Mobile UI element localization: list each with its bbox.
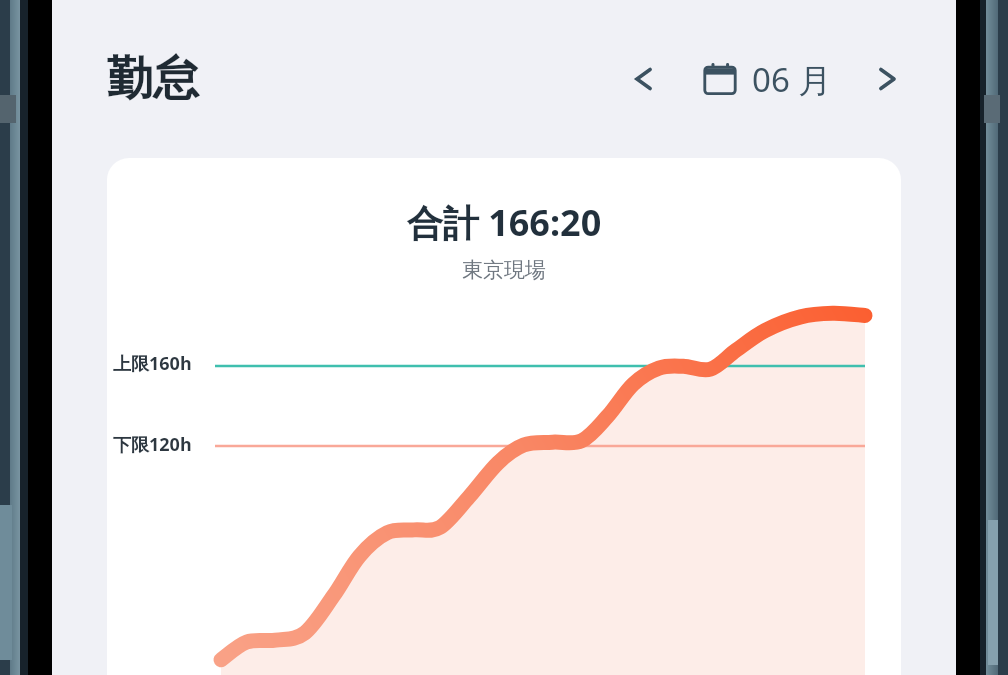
button[interactable]: 前の月 [617,53,669,105]
staticText: 下限120h [113,432,192,457]
button[interactable]: 次の月 [862,53,914,105]
staticText: 上限160h [113,351,192,376]
button[interactable]: 06 月 [695,51,838,108]
staticText: 06 月 [752,57,832,102]
button[interactable]: 合計 166:20 [107,158,901,675]
staticText: 勤怠 [107,50,199,108]
staticText: 東京現場 [107,257,901,283]
staticText: 合計 166:20 [107,198,901,247]
